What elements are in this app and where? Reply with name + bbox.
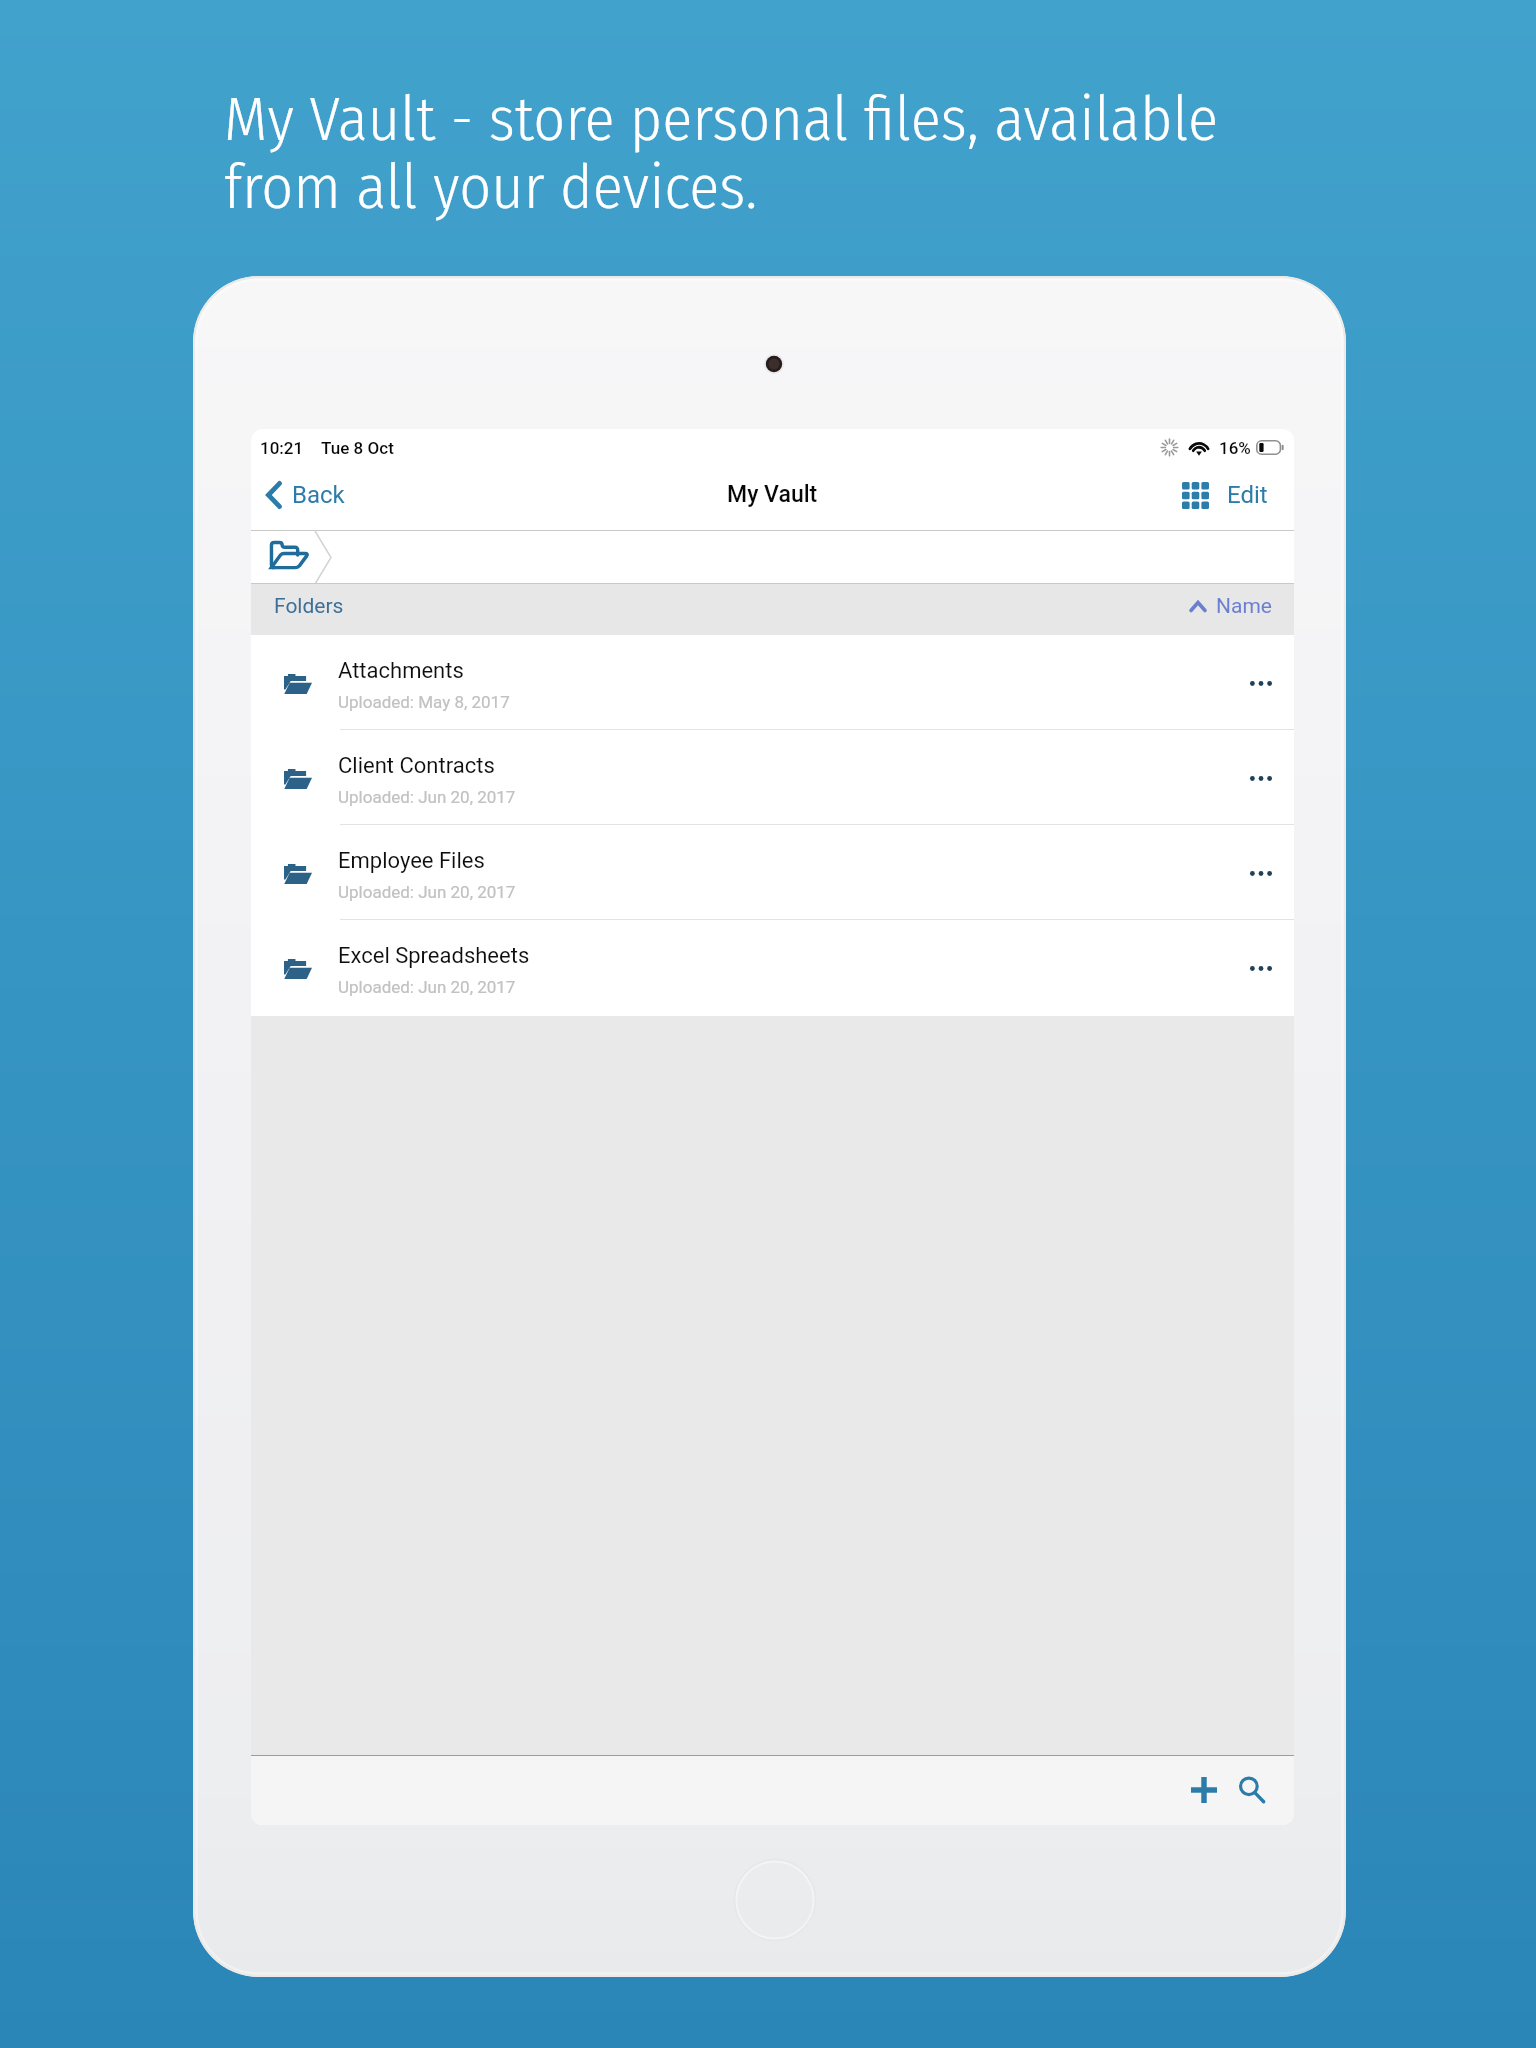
button[interactable]: More options xyxy=(1241,957,1281,980)
button[interactable]: Grid view xyxy=(1176,476,1215,515)
staticText: Name xyxy=(1216,594,1272,619)
button[interactable]: Root folder xyxy=(269,540,310,570)
button[interactable]: Search xyxy=(1232,1770,1272,1810)
staticText: My Vault xyxy=(727,481,818,508)
staticText: Folders xyxy=(274,594,344,619)
button[interactable]: Client Contracts xyxy=(251,730,1294,825)
staticText: Client Contracts xyxy=(338,753,495,779)
staticText: Edit xyxy=(1227,481,1268,509)
button[interactable]: Edit xyxy=(1223,475,1272,515)
staticText: Uploaded: May 8, 2017 xyxy=(338,692,510,712)
button[interactable]: Excel Spreadsheets xyxy=(251,920,1294,1015)
button[interactable]: Back xyxy=(260,475,351,515)
button[interactable]: More options xyxy=(1241,672,1281,695)
staticText: 16% xyxy=(1219,438,1251,458)
button[interactable]: Attachments xyxy=(251,635,1294,730)
staticText: Uploaded: Jun 20, 2017 xyxy=(338,977,516,997)
staticText: Back xyxy=(292,481,345,509)
button[interactable]: More options xyxy=(1241,767,1281,790)
button[interactable]: Add xyxy=(1184,1770,1224,1810)
button[interactable]: Name xyxy=(1186,590,1275,623)
staticText: Attachments xyxy=(338,658,464,684)
staticText: Excel Spreadsheets xyxy=(338,943,530,969)
staticText: Tue 8 Oct xyxy=(321,438,394,458)
staticText: Uploaded: Jun 20, 2017 xyxy=(338,787,516,807)
staticText: Employee Files xyxy=(338,848,485,874)
button[interactable]: More options xyxy=(1241,862,1281,885)
staticText: Uploaded: Jun 20, 2017 xyxy=(338,882,516,902)
staticText: My Vault - store personal files, availab… xyxy=(224,82,1219,224)
button[interactable]: Employee Files xyxy=(251,825,1294,920)
staticText: 10:21 xyxy=(260,438,304,458)
